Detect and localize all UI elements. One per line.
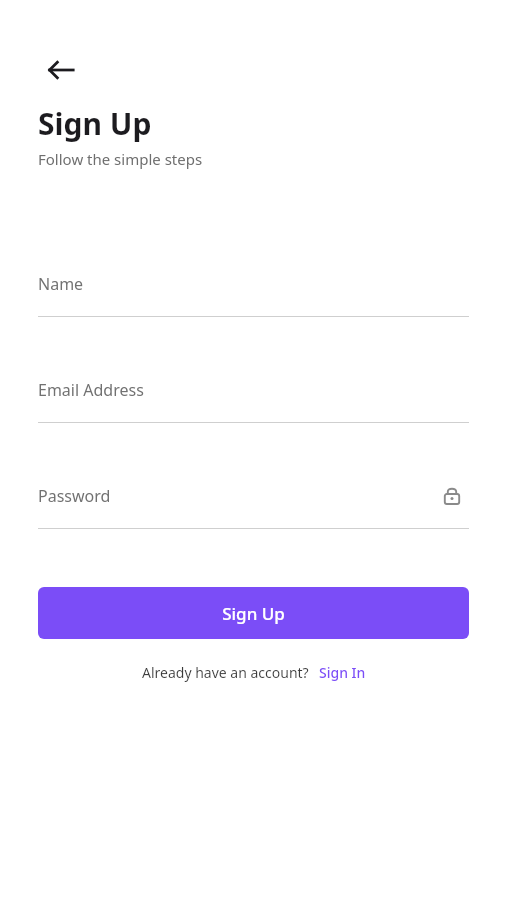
staticText: Email Address bbox=[38, 379, 144, 401]
button[interactable]: Email Address bbox=[38, 370, 469, 410]
button[interactable]: Name bbox=[38, 264, 469, 304]
staticText: Follow the simple steps bbox=[38, 149, 203, 169]
staticText: Already have an account? bbox=[142, 663, 309, 682]
button[interactable]: Show password bbox=[435, 479, 469, 513]
staticText: Sign Up bbox=[222, 602, 285, 625]
staticText: Password bbox=[38, 485, 111, 507]
button[interactable]: Back bbox=[38, 47, 84, 93]
staticText: Sign Up bbox=[38, 103, 152, 144]
staticText: Sign In bbox=[319, 663, 366, 682]
button[interactable]: Sign Up bbox=[38, 587, 469, 639]
button[interactable]: Password bbox=[38, 476, 469, 516]
button[interactable]: Sign In bbox=[319, 663, 366, 682]
staticText: Name bbox=[38, 273, 84, 295]
